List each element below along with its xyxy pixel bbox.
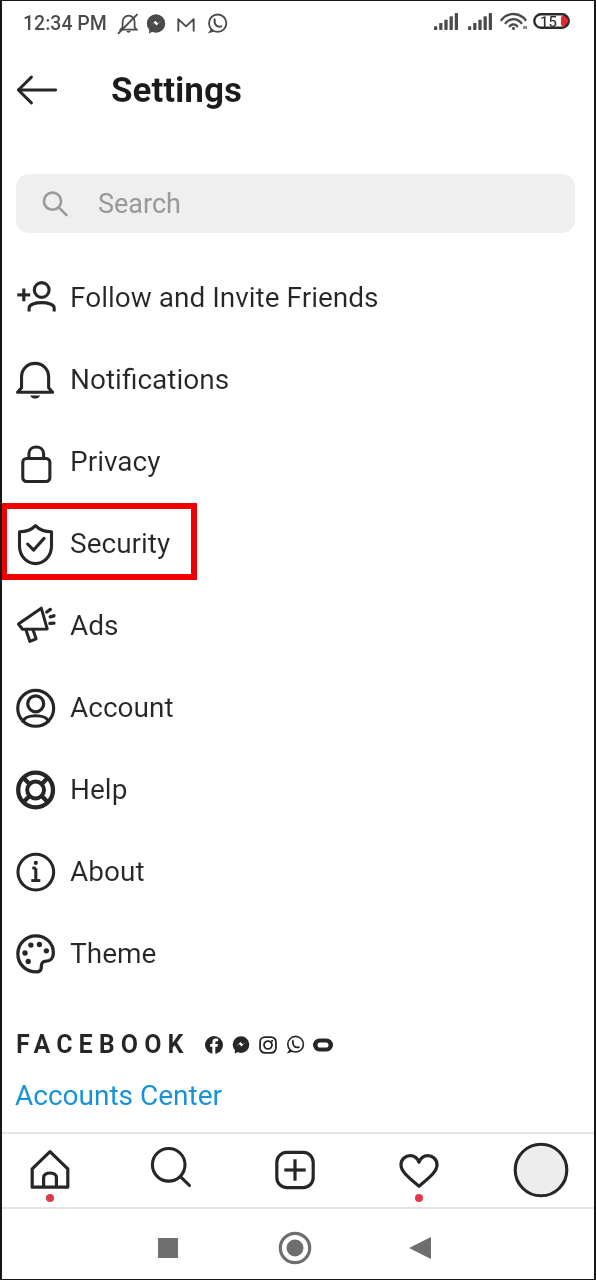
staticText: 12:34 PM	[23, 12, 107, 35]
button[interactable]: Profile	[485, 1133, 596, 1207]
button[interactable]: Follow and Invite Friends	[0, 256, 596, 338]
button[interactable]: Recents	[118, 1215, 218, 1280]
button[interactable]: Accounts Center	[15, 1079, 223, 1112]
button[interactable]: Privacy	[0, 420, 596, 502]
button[interactable]: Home	[245, 1215, 345, 1280]
staticText: Privacy	[70, 445, 161, 478]
button[interactable]: Ads	[0, 584, 596, 666]
button[interactable]: Create	[239, 1133, 351, 1207]
button[interactable]: Activity	[363, 1133, 475, 1207]
button[interactable]: Home	[0, 1133, 106, 1207]
staticText: 15	[540, 13, 558, 29]
button[interactable]: Theme	[0, 912, 596, 994]
button[interactable]: Help	[0, 748, 596, 830]
staticText: Account	[70, 691, 174, 724]
button[interactable]: Search	[116, 1133, 228, 1207]
button[interactable]: Back	[4, 64, 68, 116]
staticText: Theme	[70, 937, 157, 970]
staticText: Follow and Invite Friends	[70, 281, 379, 314]
staticText: About	[70, 855, 145, 888]
button[interactable]: About	[0, 830, 596, 912]
button[interactable]: Search	[16, 174, 575, 233]
button[interactable]: Security	[0, 502, 596, 584]
button[interactable]: Notifications	[0, 338, 596, 420]
staticText: FACEBOOK	[16, 1030, 190, 1059]
button[interactable]: Back	[370, 1215, 470, 1280]
staticText: Help	[70, 773, 128, 806]
staticText: Settings	[111, 70, 242, 111]
staticText: Security	[70, 527, 171, 560]
staticText: Search	[98, 188, 181, 220]
staticText: Ads	[70, 609, 119, 642]
staticText: Notifications	[70, 363, 230, 396]
button[interactable]: Account	[0, 666, 596, 748]
